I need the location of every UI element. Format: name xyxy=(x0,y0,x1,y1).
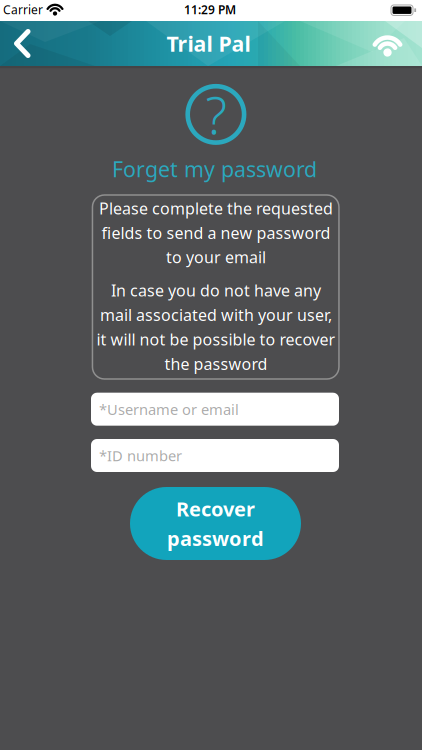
button[interactable]: Recover xyxy=(130,487,301,560)
button[interactable]: Wi-Fi xyxy=(365,21,409,66)
button[interactable]: *Username or email xyxy=(91,393,339,426)
staticText: ? xyxy=(205,81,226,148)
staticText: Forget my password xyxy=(112,155,317,183)
staticText: Carrier xyxy=(3,1,43,17)
staticText: In case you do not have any mail associa… xyxy=(96,280,335,374)
staticText: 11:29 PM xyxy=(184,1,236,17)
staticText: *Username or email xyxy=(99,399,239,419)
button[interactable]: *ID number xyxy=(91,439,339,472)
staticText: Please complete the requested fields to … xyxy=(99,198,333,268)
staticText: Trial Pal xyxy=(166,29,250,58)
staticText: password xyxy=(167,525,264,552)
button[interactable]: Back xyxy=(0,21,44,66)
staticText: *ID number xyxy=(99,446,182,465)
staticText: Recover xyxy=(176,495,255,522)
